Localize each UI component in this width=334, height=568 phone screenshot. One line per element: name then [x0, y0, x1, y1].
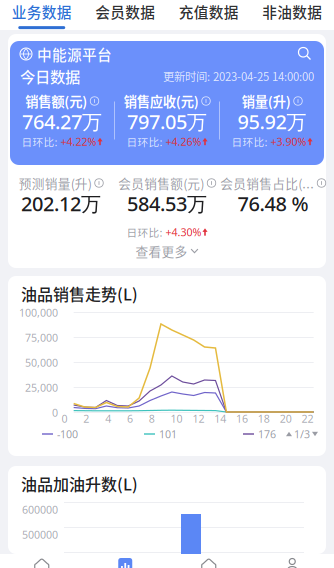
staticText: 75,000: [25, 330, 58, 345]
staticText: 10: [171, 411, 183, 426]
staticText: +3.90%: [270, 134, 306, 149]
button[interactable]: 数据: [83, 554, 167, 568]
button[interactable]: 非油数据: [250, 0, 334, 30]
staticText: -100: [57, 427, 78, 441]
staticText: 查看更多: [135, 242, 187, 260]
staticText: 100,000: [19, 305, 58, 320]
staticText: 业务数据: [12, 1, 72, 22]
staticText: 充值数据: [179, 1, 239, 22]
staticText: 1/3: [294, 427, 310, 441]
staticText: 8: [149, 411, 155, 426]
staticText: 600000: [22, 502, 58, 517]
staticText: 101: [159, 427, 177, 441]
staticText: 202.12万: [21, 190, 101, 217]
staticText: 销量(升): [242, 91, 291, 111]
staticText: 非油数据: [262, 1, 322, 22]
staticText: 会员销售占比(...: [220, 174, 314, 192]
staticText: 日环比:: [231, 134, 269, 149]
staticText: 4: [105, 411, 111, 426]
button[interactable]: 会员数据: [83, 0, 167, 30]
staticText: +4.26%: [165, 134, 201, 149]
staticText: 2: [83, 411, 89, 426]
staticText: 更新时间: 2023-04-25 14:00:00: [163, 68, 314, 84]
staticText: 797.05万: [127, 108, 207, 135]
staticText: 14: [214, 411, 226, 426]
button[interactable]: 我的: [250, 554, 334, 568]
button[interactable]: 业务数据: [0, 0, 83, 30]
staticText: 日环比:: [21, 134, 59, 149]
staticText: 76.48 %: [237, 190, 308, 217]
staticText: 日环比:: [126, 134, 164, 149]
button[interactable]: 搜索: [296, 45, 314, 63]
staticText: 50,000: [25, 355, 58, 370]
button[interactable]: 充值数据: [167, 0, 250, 30]
button[interactable]: 首页: [0, 554, 83, 568]
staticText: 销售额(元): [25, 91, 87, 111]
staticText: 764.27万: [22, 108, 102, 135]
staticText: 6: [127, 411, 133, 426]
staticText: 会员数据: [95, 1, 155, 22]
staticText: 销售应收(元): [124, 91, 199, 111]
staticText: 0: [52, 405, 58, 420]
staticText: 0: [61, 411, 67, 426]
staticText: 会员销售额(元): [118, 174, 204, 192]
staticText: +4.22%: [60, 134, 96, 149]
staticText: 584.53万: [127, 190, 207, 217]
staticText: 18: [258, 411, 270, 426]
button[interactable]: 门店: [167, 554, 250, 568]
staticText: 预测销量(升): [19, 174, 92, 192]
staticText: 500000: [22, 527, 58, 542]
staticText: 12: [192, 411, 204, 426]
staticText: 油品加油升数(L): [21, 472, 138, 495]
staticText: 400000: [22, 552, 58, 567]
staticText: 中能源平台: [37, 43, 112, 65]
staticText: 176: [258, 427, 276, 441]
staticText: 25,000: [25, 380, 58, 395]
staticText: 22: [301, 411, 313, 426]
staticText: +4.30%: [165, 225, 201, 239]
button[interactable]: 查看更多: [8, 241, 326, 261]
staticText: 今日数据: [20, 65, 80, 87]
staticText: 95.92万: [237, 108, 306, 135]
staticText: 日环比:: [126, 224, 164, 240]
staticText: 20: [280, 411, 292, 426]
staticText: 油品销售走势(L): [21, 282, 138, 305]
staticText: 16: [236, 411, 248, 426]
